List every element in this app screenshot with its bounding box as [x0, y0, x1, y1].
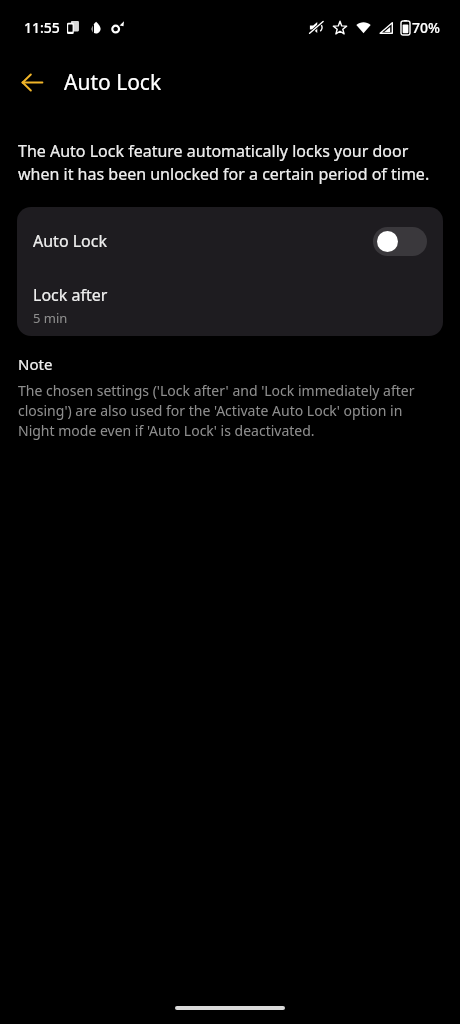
staticText: Auto Lock	[64, 68, 162, 97]
staticText: 5 min	[33, 309, 68, 327]
staticText: The Auto Lock feature automatically lock…	[18, 140, 442, 185]
button[interactable]: Lock after	[17, 275, 443, 336]
staticText: The chosen settings ('Lock after' and 'L…	[18, 381, 442, 440]
staticText: Auto Lock	[33, 230, 108, 252]
button[interactable]: Back	[8, 58, 56, 106]
staticText: 11:55	[24, 18, 60, 37]
button[interactable]: Auto Lock	[17, 207, 443, 275]
staticText: Note	[18, 354, 53, 374]
button[interactable]: Auto Lock toggle, off	[373, 227, 427, 256]
staticText: Lock after	[33, 284, 108, 306]
staticText: 70%	[412, 18, 440, 37]
